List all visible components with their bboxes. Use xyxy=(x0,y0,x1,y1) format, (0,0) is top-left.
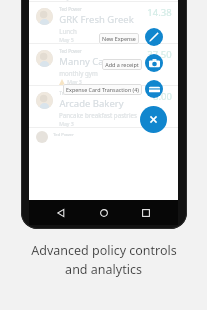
button[interactable]: Ted Power xyxy=(29,44,178,85)
button[interactable]: Home xyxy=(94,203,114,223)
button[interactable]: Close xyxy=(140,106,167,133)
staticText: Ted Power xyxy=(53,132,74,138)
staticText: Pancake breakfast pastries xyxy=(59,111,137,119)
staticText: 14.38 xyxy=(147,6,172,19)
button[interactable]: Expense Card Transaction xyxy=(145,80,163,98)
staticText: Ted Power xyxy=(59,48,82,54)
button[interactable]: Ted Power xyxy=(29,2,178,43)
staticText: New Expense xyxy=(102,35,136,42)
button[interactable]: Add a receipt xyxy=(145,54,163,72)
button[interactable]: Back xyxy=(51,203,71,223)
staticText: May 5 xyxy=(59,36,74,43)
staticText: 37.50 xyxy=(147,48,172,61)
button[interactable]: New Expense xyxy=(99,33,139,44)
staticText: Tom Power xyxy=(59,90,84,96)
staticText: Advanced policy controls xyxy=(31,242,177,259)
staticText: and analytics xyxy=(65,261,142,278)
staticText: 8.00 xyxy=(153,90,172,103)
staticText: Ted Power xyxy=(59,6,82,12)
button[interactable]: New Expense xyxy=(145,28,163,46)
staticText: GRK Fresh Greek xyxy=(59,13,134,26)
staticText: Arcade Bakery xyxy=(59,97,124,110)
staticText: Lunch xyxy=(59,27,77,35)
staticText: May 3 xyxy=(59,120,74,127)
staticText: May 3 xyxy=(67,78,82,85)
staticText: Add a receipt xyxy=(105,61,139,68)
button[interactable]: Tom Power xyxy=(29,86,178,127)
staticText: monthly gym xyxy=(59,69,98,77)
staticText: Expense Card Transaction (4) xyxy=(66,86,139,93)
button[interactable]: Expense Card Transaction (4) xyxy=(63,84,142,95)
staticText: May 5 xyxy=(59,0,74,1)
button[interactable]: Add a receipt xyxy=(102,59,142,70)
button[interactable]: Recents xyxy=(136,203,156,223)
staticText: Manny Cantor xyxy=(59,55,123,68)
